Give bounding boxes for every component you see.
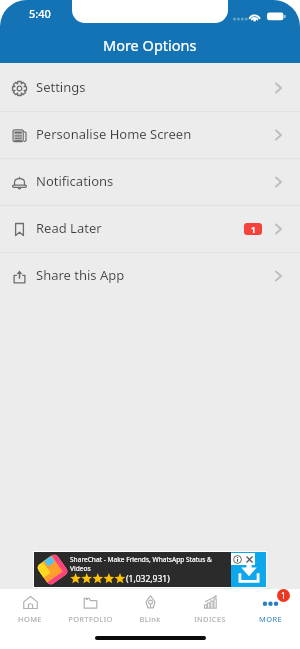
button[interactable]: Share this App — [0, 253, 300, 299]
staticText: HOME — [18, 614, 42, 623]
staticText: 1 — [281, 590, 286, 601]
staticText: Personalise Home Screen — [36, 125, 192, 143]
button[interactable]: Personalise Home Screen — [0, 112, 300, 158]
staticText: (1,032,931) — [126, 573, 170, 585]
button[interactable]: Read Later — [0, 206, 300, 252]
button[interactable]: 1 — [240, 589, 300, 623]
staticText: PORTFOLIO — [68, 614, 113, 623]
button[interactable]: Notifications — [0, 159, 300, 205]
staticText: BLink — [139, 614, 161, 623]
staticText: More Options — [103, 35, 197, 55]
button[interactable]: INDICES — [180, 589, 240, 623]
staticText: Notifications — [36, 172, 114, 190]
staticText: MORE — [259, 614, 282, 623]
button[interactable]: Settings — [0, 65, 300, 111]
staticText: 1 — [251, 224, 256, 235]
button[interactable]: PORTFOLIO — [60, 589, 120, 623]
button[interactable]: HOME — [0, 589, 60, 623]
staticText: INDICES — [194, 614, 226, 623]
button[interactable]: BLink — [120, 589, 180, 623]
staticText: Share this App — [36, 266, 125, 284]
staticText: ShareChat - Make Friends, WhatsApp Statu… — [70, 555, 231, 573]
staticText: 5:40 — [29, 6, 51, 21]
staticText: Settings — [36, 78, 86, 96]
staticText: Read Later — [36, 219, 102, 237]
